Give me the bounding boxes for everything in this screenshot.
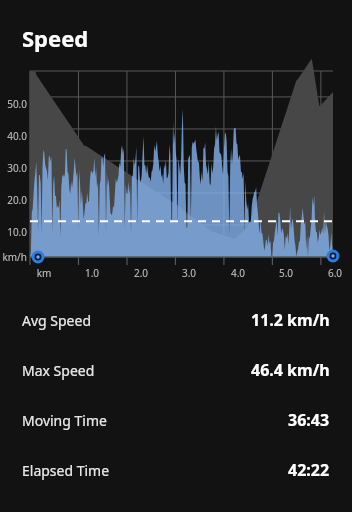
staticText: 11.2 km/h <box>251 309 330 331</box>
staticText: 5.0 <box>275 266 297 280</box>
staticText: 30.0 <box>0 161 27 175</box>
staticText: 3.0 <box>178 266 200 280</box>
staticText: 50.0 <box>0 97 27 111</box>
staticText: Max Speed <box>22 361 95 380</box>
staticText: 46.4 km/h <box>251 359 330 381</box>
staticText: km <box>33 266 55 280</box>
staticText: 1.0 <box>81 266 103 280</box>
staticText: 6.0 <box>324 266 346 280</box>
staticText: Elapsed Time <box>22 461 110 480</box>
button[interactable]: Max Speed <box>0 345 352 395</box>
staticText: 40.0 <box>0 129 27 143</box>
staticText: 42:22 <box>288 459 330 481</box>
staticText: km/h <box>0 250 27 264</box>
staticText: 2.0 <box>130 266 152 280</box>
staticText: 36:43 <box>288 409 330 431</box>
staticText: 20.0 <box>0 193 27 207</box>
staticText: Speed <box>22 23 89 53</box>
staticText: 4.0 <box>227 266 249 280</box>
button[interactable]: Moving Time <box>0 395 352 445</box>
button[interactable]: Avg Speed <box>0 295 352 345</box>
other: Speed and elevation chart <box>0 0 352 512</box>
button[interactable]: Elapsed Time <box>0 445 352 495</box>
staticText: Moving Time <box>22 411 107 430</box>
staticText: 10.0 <box>0 225 27 239</box>
staticText: Avg Speed <box>22 311 92 330</box>
